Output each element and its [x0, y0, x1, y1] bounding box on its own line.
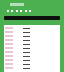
- button[interactable]: [4, 16, 60, 20]
